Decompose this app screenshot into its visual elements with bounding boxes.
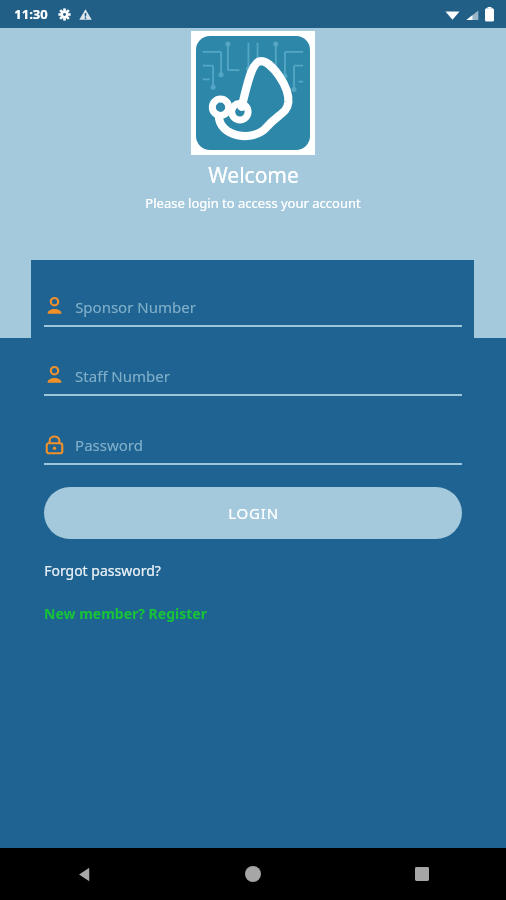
staticText: LOGIN <box>228 503 279 523</box>
staticText: Welcome <box>208 161 299 190</box>
staticText: 11:30 <box>14 5 48 23</box>
staticText: Forgot password? <box>44 561 161 580</box>
staticText: Password <box>75 435 143 455</box>
button[interactable]: Forgot password? <box>44 561 161 580</box>
staticText: Please login to access your account <box>145 194 361 212</box>
other: User <box>44 296 65 317</box>
button[interactable]: Recents <box>337 848 506 900</box>
button[interactable]: User <box>44 296 462 327</box>
other: Password <box>44 434 65 455</box>
button[interactable]: LOGIN <box>44 487 462 539</box>
button[interactable]: User <box>44 365 462 396</box>
button[interactable]: Password <box>44 434 462 465</box>
button[interactable]: New member? Register <box>44 604 207 623</box>
staticText: Staff Number <box>75 366 170 386</box>
other: User <box>44 365 65 386</box>
staticText: Sponsor Number <box>75 297 196 317</box>
button[interactable]: Back <box>0 848 168 900</box>
staticText: New member? Register <box>44 604 207 623</box>
button[interactable]: Home <box>168 848 337 900</box>
